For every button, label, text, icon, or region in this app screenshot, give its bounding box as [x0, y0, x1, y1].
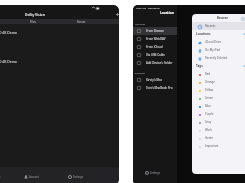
staticText: iCloud Drive	[205, 40, 221, 44]
staticText: Personal	[135, 72, 145, 75]
staticText: Account	[29, 175, 39, 179]
button[interactable]: Home	[192, 134, 245, 142]
button[interactable]: From Browse	[133, 27, 177, 35]
button[interactable]: Kirsty's Mac	[133, 76, 177, 84]
staticText: Work	[205, 128, 212, 132]
staticText: Settings	[150, 171, 160, 175]
staticText: Via USB Cable	[146, 53, 165, 57]
staticText: Kirsty's Mac	[146, 78, 163, 82]
staticText: UHD 4K Demo	[0, 30, 17, 35]
staticText: Settings	[73, 175, 83, 179]
staticText: Red	[205, 72, 211, 76]
staticText: 10:21 AM Tue Feb 22	[136, 7, 160, 10]
button[interactable]: From iCloud	[133, 43, 177, 51]
staticText: Files	[0, 175, 1, 179]
button[interactable]: Green	[192, 94, 245, 102]
button[interactable]: Blue	[192, 102, 245, 110]
staticText: Home	[205, 136, 213, 140]
button[interactable]: Red	[192, 70, 245, 78]
staticText: Files	[30, 20, 36, 24]
button[interactable]: Account	[24, 171, 39, 182]
staticText: Important	[205, 144, 219, 148]
button[interactable]: Via USB Cable	[133, 51, 177, 59]
button[interactable]: Important	[192, 142, 245, 150]
button[interactable]: Yellow	[192, 86, 245, 94]
staticText: Add Files	[135, 23, 146, 26]
button[interactable]: From WebDAV	[133, 35, 177, 43]
button[interactable]: UHD 4K Demo	[0, 28, 119, 37]
staticText: Tom's MacBook Pro	[146, 86, 173, 90]
staticText: From iCloud	[146, 45, 163, 49]
staticText: Gray	[205, 120, 212, 124]
staticText: Green	[205, 96, 214, 100]
button[interactable]: Files	[0, 171, 1, 182]
button[interactable]: More options	[240, 16, 245, 21]
button[interactable]: Orange	[192, 78, 245, 86]
button[interactable]: Tom's MacBook Pro	[133, 84, 177, 92]
staticText: UHD 4K Demo	[0, 59, 17, 64]
button[interactable]: Server	[70, 19, 92, 24]
staticText: Blue	[205, 104, 211, 108]
button[interactable]: Work	[192, 126, 245, 134]
button[interactable]: Files	[22, 19, 44, 24]
button[interactable]: Purple	[192, 110, 245, 118]
button[interactable]: Recents	[192, 22, 245, 30]
staticText: From WebDAV	[146, 37, 166, 41]
button[interactable]: Settings	[145, 168, 160, 177]
button[interactable]: Settings	[68, 171, 83, 182]
staticText: Recents	[205, 24, 216, 28]
staticText: Orange	[205, 80, 215, 84]
staticText: Yellow	[205, 88, 214, 92]
staticText: Browse	[217, 16, 228, 20]
staticText: Server	[77, 20, 86, 24]
staticText: Location	[160, 11, 174, 15]
staticText: Tags	[196, 64, 203, 68]
button[interactable]: Add	[114, 11, 119, 17]
staticText: Add Device's Folder	[146, 61, 173, 65]
staticText: Purple	[205, 112, 214, 116]
staticText: Locations	[196, 32, 211, 36]
button[interactable]: On My iPad	[192, 46, 245, 54]
button[interactable]: Add Device's Folder	[133, 59, 177, 67]
button[interactable]: Recently Deleted	[192, 54, 245, 62]
button[interactable]: iCloud Drive	[192, 38, 245, 46]
staticText: From Browse	[146, 29, 164, 33]
staticText: Dolby Vision	[25, 12, 45, 16]
button[interactable]: UHD 4K Demo	[0, 57, 119, 66]
button[interactable]: Gray	[192, 118, 245, 126]
staticText: Recently Deleted	[205, 56, 228, 60]
staticText: On My iPad	[205, 48, 221, 52]
